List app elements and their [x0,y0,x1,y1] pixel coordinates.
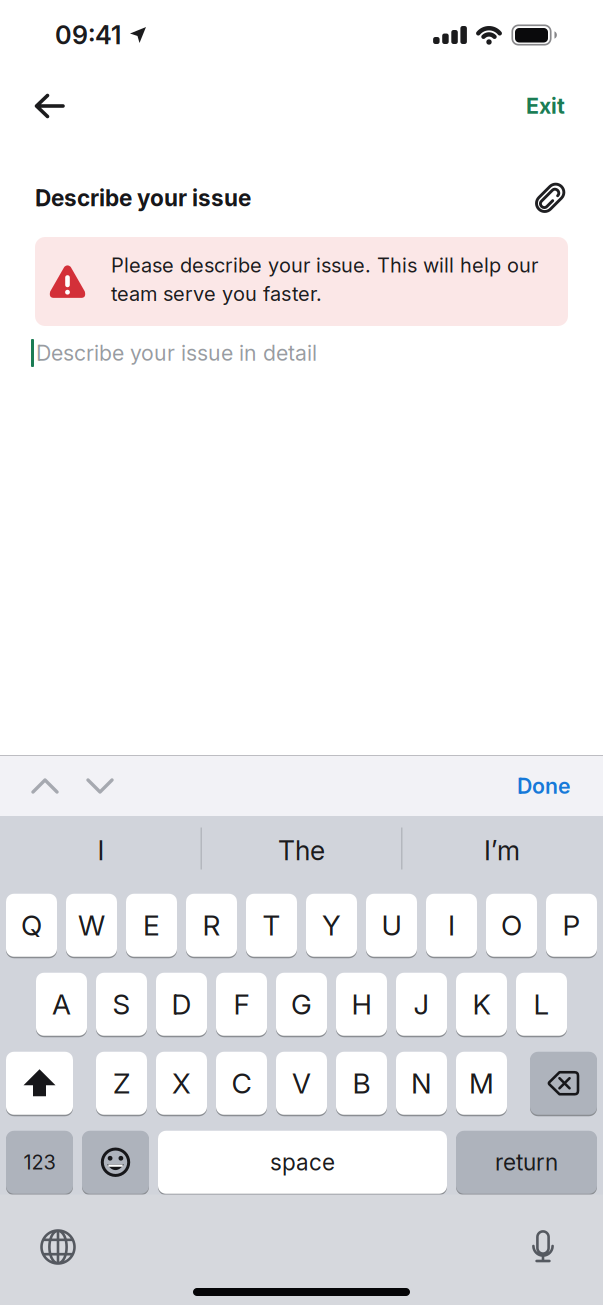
button[interactable]: Q [6,893,57,957]
button[interactable]: Next field [80,766,120,806]
staticText: 123 [23,1150,55,1174]
staticText: I [97,835,104,866]
button[interactable]: O [486,893,537,957]
staticText: E [143,909,160,942]
button[interactable]: Delete [530,1051,597,1115]
button[interactable]: Attach file [533,181,603,215]
button[interactable]: C [216,1051,267,1115]
staticText: T [262,909,280,942]
button[interactable]: Back [0,94,64,118]
button[interactable]: N [396,1051,447,1115]
button[interactable]: T [246,893,297,957]
button[interactable]: Shift [6,1051,73,1115]
staticText: 09:41 [55,20,121,50]
staticText: D [171,988,191,1021]
staticText: B [352,1067,370,1100]
staticText: N [411,1067,432,1100]
staticText: Q [21,909,42,942]
button[interactable]: Next keyboard [39,1228,77,1266]
button[interactable]: J [396,972,447,1036]
staticText: C [231,1067,251,1100]
staticText: Exit [526,93,565,119]
button[interactable]: Z [96,1051,147,1115]
staticText: L [533,988,549,1021]
staticText: Describe your issue in detail [36,340,317,366]
button[interactable]: K [456,972,507,1036]
button[interactable]: S [96,972,147,1036]
staticText: R [202,909,220,942]
staticText: space [270,1149,335,1176]
button[interactable]: The [202,816,401,885]
button[interactable]: 123 [6,1130,73,1194]
button[interactable]: I [426,893,477,957]
button[interactable]: Done [517,773,571,799]
button[interactable]: D [156,972,207,1036]
button[interactable]: R [186,893,237,957]
button[interactable]: I’m [402,816,601,885]
staticText: A [52,988,71,1021]
button[interactable]: Emoji [82,1130,149,1194]
button[interactable]: A [36,972,87,1036]
staticText: Z [113,1067,130,1100]
staticText: O [501,909,522,942]
staticText: Please describe your issue. This will he… [111,253,538,277]
staticText: Done [517,773,571,799]
staticText: return [495,1149,558,1176]
button[interactable]: Describe your issue in detail [0,326,603,367]
staticText: W [78,909,105,942]
staticText: U [381,909,401,942]
button[interactable]: return [456,1130,597,1194]
button[interactable]: X [156,1051,207,1115]
button[interactable]: L [516,972,567,1036]
button[interactable]: U [366,893,417,957]
staticText: F [233,988,249,1021]
button[interactable]: F [216,972,267,1036]
button[interactable]: Previous field [25,766,65,806]
staticText: G [291,988,312,1021]
staticText: Y [322,909,341,942]
button[interactable]: Exit [526,93,603,119]
staticText: I [448,909,455,942]
button[interactable]: space [158,1130,447,1194]
staticText: S [112,988,130,1021]
staticText: team serve you faster. [111,282,322,306]
staticText: X [172,1067,191,1100]
button[interactable]: G [276,972,327,1036]
staticText: K [472,988,490,1021]
staticText: I’m [484,835,520,866]
button[interactable]: M [456,1051,507,1115]
staticText: J [413,988,429,1021]
staticText: Describe your issue [35,185,251,211]
button[interactable]: W [66,893,117,957]
button[interactable]: E [126,893,177,957]
button[interactable]: Dictation [528,1230,558,1264]
button[interactable]: V [276,1051,327,1115]
button[interactable]: H [336,972,387,1036]
staticText: V [292,1067,311,1100]
staticText: The [278,835,325,866]
button[interactable]: Y [306,893,357,957]
staticText: P [562,909,580,942]
button[interactable]: P [546,893,597,957]
button[interactable]: I [1,816,200,885]
staticText: M [469,1067,494,1100]
staticText: H [351,988,371,1021]
button[interactable]: B [336,1051,387,1115]
